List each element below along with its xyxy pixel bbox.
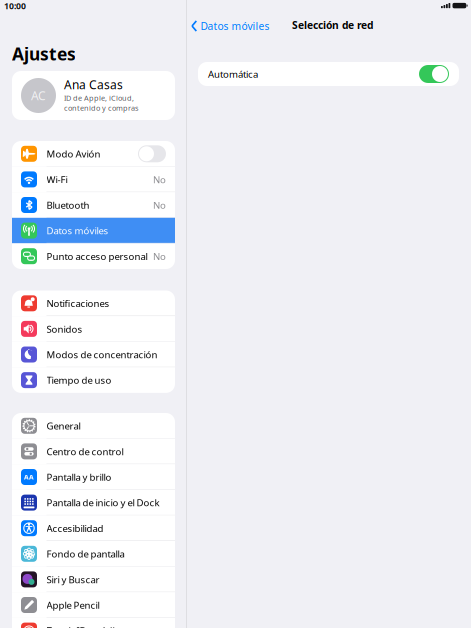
button[interactable]: Datos móviles <box>12 218 175 243</box>
staticText: Bluetooth <box>46 198 89 212</box>
staticText: General <box>46 419 80 432</box>
button[interactable]: Automática <box>198 62 459 86</box>
staticText: Notificaciones <box>46 297 109 310</box>
button[interactable]: AC <box>12 71 175 120</box>
button[interactable]: Siri y Buscar <box>12 567 175 592</box>
staticText: Selección de red <box>292 18 373 32</box>
staticText: contenido y compras <box>64 103 139 113</box>
button[interactable]: AA <box>12 464 175 490</box>
staticText: Datos móviles <box>200 19 269 33</box>
button[interactable]: Sonidos <box>12 316 175 342</box>
button[interactable]: Notificaciones <box>12 290 175 316</box>
staticText: Pantalla de inicio y el Dock <box>46 496 159 509</box>
staticText: Sonidos <box>46 322 82 335</box>
staticText: Ajustes <box>12 42 76 66</box>
button[interactable]: Apple Pencil <box>12 592 175 618</box>
staticText: 10:00 <box>4 0 26 12</box>
staticText: Automática <box>208 67 258 81</box>
staticText: Modos de concentración <box>46 348 157 361</box>
staticText: No <box>153 250 166 263</box>
staticText: AA <box>24 472 34 482</box>
staticText: Datos móviles <box>46 224 108 237</box>
button[interactable]: Fondo de pantalla <box>12 541 175 567</box>
staticText: Punto acceso personal <box>46 250 147 263</box>
button[interactable]: Punto acceso personal <box>12 243 175 269</box>
button[interactable]: Centro de control <box>12 439 175 464</box>
button[interactable]: Modo Avión <box>12 141 175 167</box>
staticText: Touch ID y código <box>46 624 126 628</box>
staticText: Ana Casas <box>64 76 123 93</box>
button[interactable]: Tiempo de uso <box>12 367 175 393</box>
button[interactable]: Wi-Fi <box>12 167 175 192</box>
staticText: Siri y Buscar <box>46 573 99 586</box>
button[interactable]: Bluetooth <box>12 192 175 218</box>
button[interactable]: Touch ID y código <box>12 618 175 628</box>
staticText: Pantalla y brillo <box>46 470 111 484</box>
staticText: Fondo de pantalla <box>46 547 124 560</box>
button[interactable]: Accesibilidad <box>12 515 175 541</box>
staticText: Modo Avión <box>46 147 100 160</box>
button[interactable]: General <box>12 413 175 439</box>
staticText: Apple Pencil <box>46 598 99 612</box>
staticText: Tiempo de uso <box>46 374 111 387</box>
button[interactable]: Pantalla de inicio y el Dock <box>12 490 175 515</box>
staticText: Centro de control <box>46 445 123 458</box>
staticText: No <box>153 173 166 186</box>
button[interactable]: Modos de concentración <box>12 342 175 367</box>
staticText: AC <box>31 87 46 104</box>
staticText: No <box>153 198 166 212</box>
staticText: Accesibilidad <box>46 522 103 535</box>
staticText: Wi-Fi <box>46 173 67 186</box>
button[interactable]: Datos móviles <box>191 14 283 38</box>
staticText: ID de Apple, iCloud, <box>64 93 134 103</box>
